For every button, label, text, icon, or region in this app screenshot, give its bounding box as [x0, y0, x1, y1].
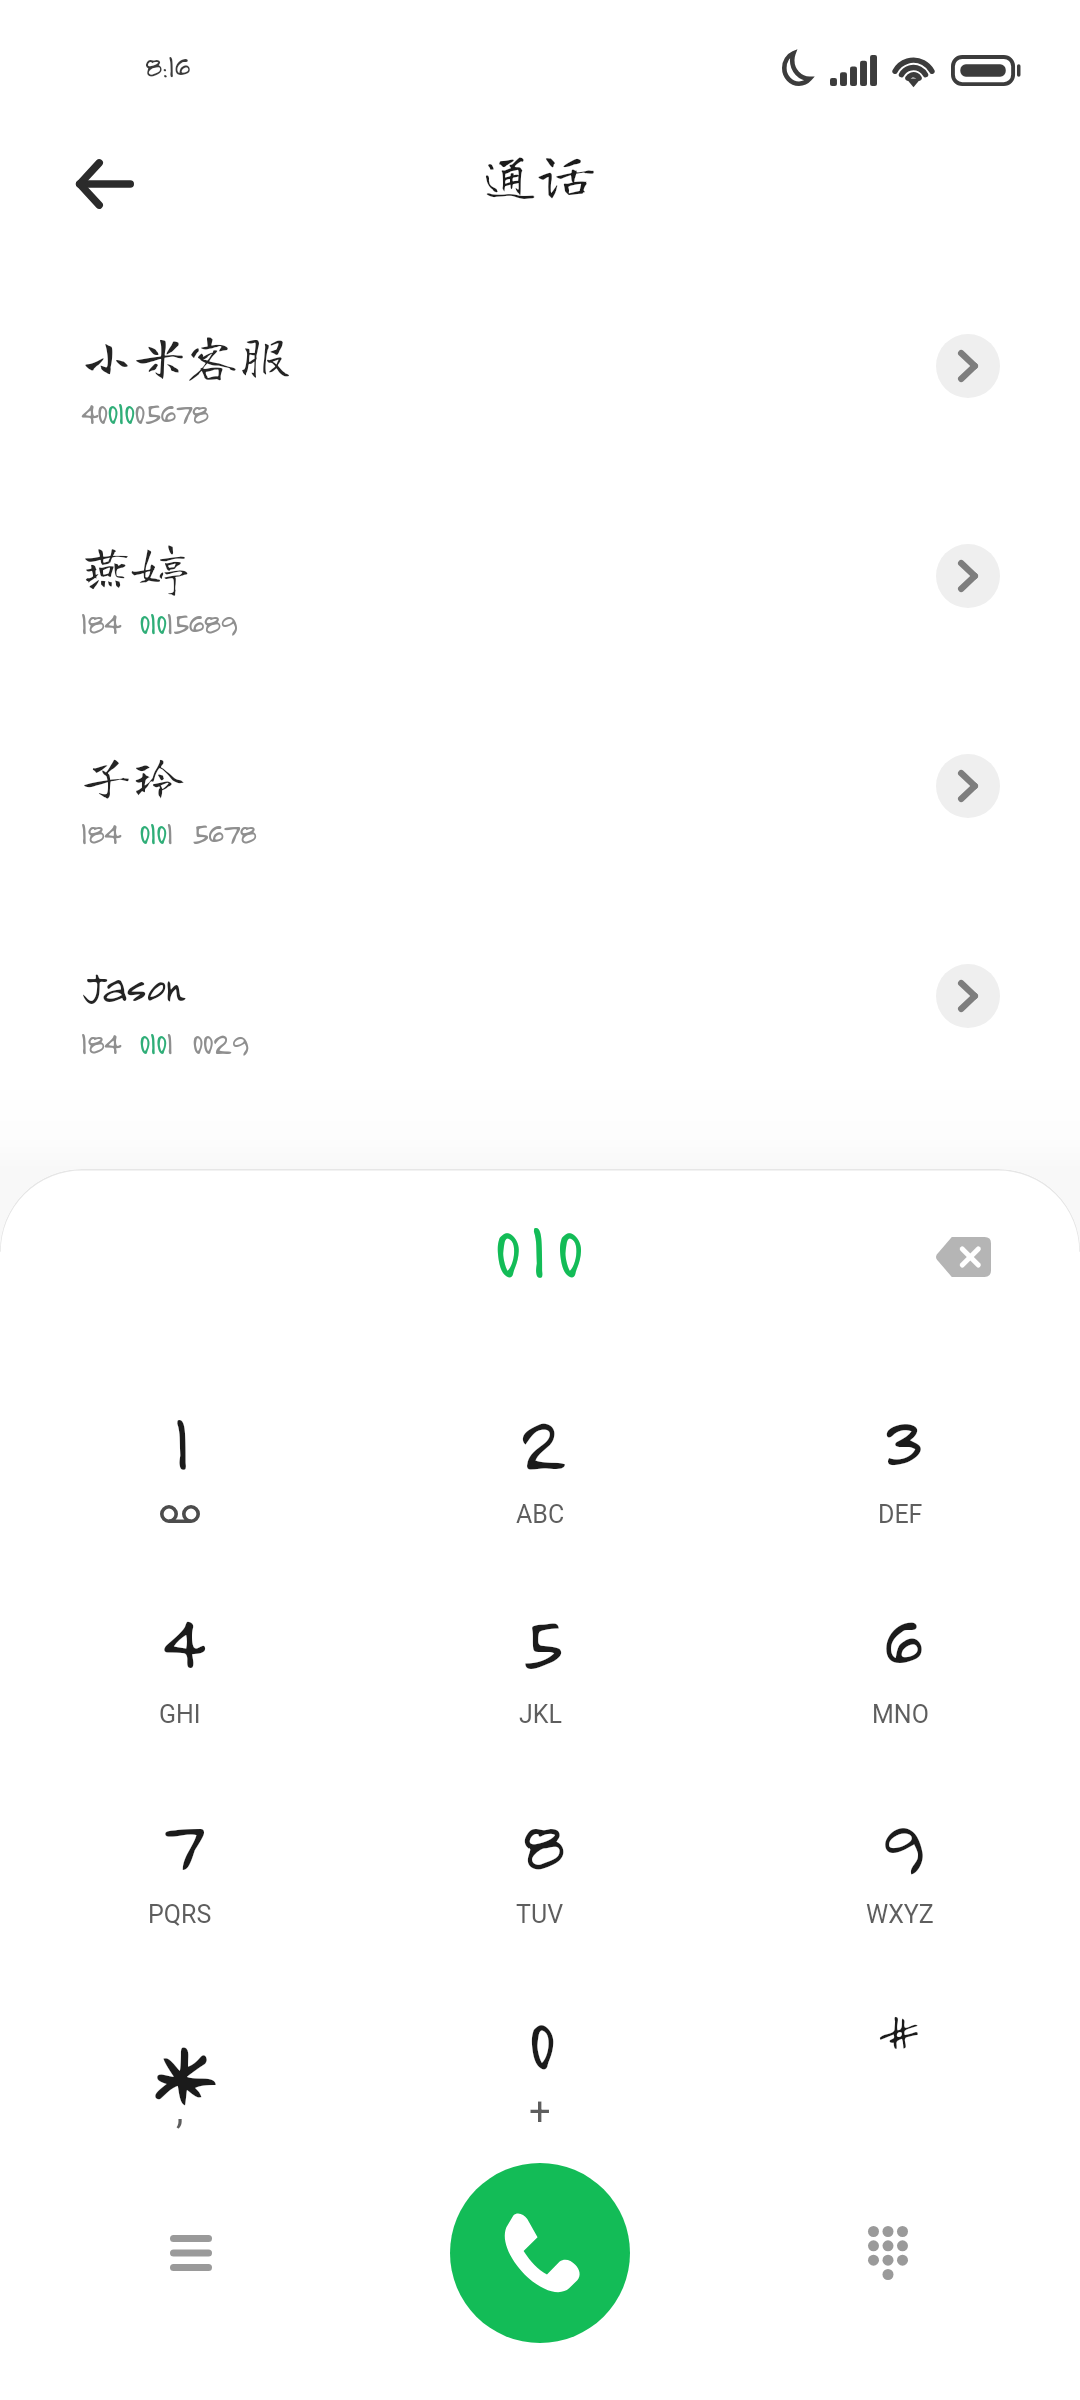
- staticText: 9: [879, 1793, 922, 1889]
- staticText: 3: [881, 1393, 920, 1489]
- button[interactable]: 4: [30, 1593, 330, 1768]
- button[interactable]: Call log: [148, 2210, 234, 2296]
- staticText: WXYZ: [866, 1900, 934, 1929]
- button[interactable]: Jason: [0, 930, 1080, 1130]
- staticText: 8: [520, 1793, 561, 1889]
- staticText: 子玲: [80, 748, 186, 801]
- button[interactable]: 子玲: [0, 720, 1080, 920]
- staticText: *: [148, 2003, 213, 2133]
- staticText: #: [876, 1999, 919, 2061]
- staticText: 5: [521, 1593, 560, 1689]
- staticText: 4001005678: [80, 393, 208, 432]
- staticText: +: [529, 2090, 551, 2135]
- button[interactable]: 8: [390, 1793, 690, 1968]
- staticText: 4: [160, 1593, 201, 1689]
- button[interactable]: 1: [30, 1393, 330, 1568]
- button[interactable]: 2: [390, 1393, 690, 1568]
- button[interactable]: 3: [750, 1393, 1050, 1568]
- button[interactable]: 5: [390, 1593, 690, 1768]
- staticText: DEF: [878, 1500, 923, 1529]
- staticText: 2: [518, 1393, 563, 1489]
- staticText: TUV: [516, 1900, 564, 1929]
- button[interactable]: 7: [30, 1793, 330, 1968]
- button[interactable]: 6: [750, 1593, 1050, 1768]
- button[interactable]: #: [750, 1993, 1050, 2168]
- button[interactable]: 小米客服: [0, 300, 1080, 500]
- button[interactable]: Back: [52, 132, 158, 236]
- button[interactable]: Open contact: [936, 334, 1000, 398]
- staticText: MNO: [872, 1700, 929, 1729]
- staticText: Jason: [80, 958, 184, 1011]
- staticText: 0: [527, 1993, 553, 2089]
- button[interactable]: 燕婷: [0, 510, 1080, 710]
- staticText: JKL: [519, 1700, 562, 1729]
- button[interactable]: 9: [750, 1793, 1050, 1968]
- button[interactable]: Open contact: [936, 964, 1000, 1028]
- button[interactable]: Call: [450, 2163, 630, 2343]
- staticText: PQRS: [148, 1900, 212, 1929]
- staticText: 6: [882, 1593, 919, 1689]
- button[interactable]: Open contact: [936, 544, 1000, 608]
- button[interactable]: Keypad: [845, 2210, 931, 2296]
- staticText: 8:16: [144, 46, 189, 85]
- button[interactable]: Backspace: [920, 1217, 1006, 1297]
- staticText: 小米客服: [80, 328, 292, 381]
- button[interactable]: Open contact: [936, 754, 1000, 818]
- staticText: 通话: [482, 146, 594, 202]
- staticText: ,: [176, 2088, 184, 2133]
- staticText: 1: [172, 1393, 188, 1489]
- staticText: 184 0101 5678: [80, 813, 255, 852]
- button[interactable]: 0: [390, 1993, 690, 2168]
- staticText: ABC: [516, 1500, 565, 1529]
- staticText: GHI: [159, 1700, 201, 1729]
- staticText: 7: [160, 1793, 201, 1889]
- staticText: 010: [493, 1202, 592, 1296]
- staticText: 184 0101 0029: [80, 1023, 248, 1062]
- button[interactable]: *: [30, 1993, 330, 2168]
- staticText: 燕婷: [80, 538, 186, 591]
- staticText: 184 01015689: [80, 603, 237, 642]
